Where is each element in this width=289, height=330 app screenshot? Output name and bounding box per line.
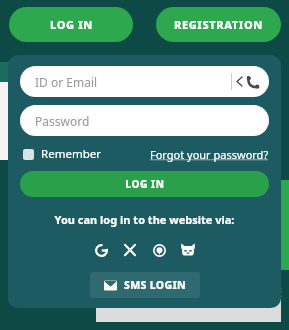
- staticText: LOG IN: [125, 177, 165, 191]
- staticText: Forgot your password?: [150, 147, 269, 162]
- button[interactable]: LOG IN: [9, 7, 133, 42]
- staticText: You can log in to the website via:: [20, 212, 269, 227]
- staticText: Password: [35, 113, 90, 129]
- staticText: REGISTRATION: [174, 17, 263, 32]
- button[interactable]: Sign in with VK: [178, 240, 198, 260]
- button[interactable]: Forgot your password?: [150, 147, 269, 162]
- staticText: LOG IN: [50, 17, 93, 32]
- button[interactable]: Password: [20, 105, 269, 136]
- button[interactable]: Remember: [23, 146, 101, 162]
- staticText: E: [276, 284, 283, 300]
- staticText: SMS LOGIN: [124, 278, 187, 292]
- button[interactable]: REGISTRATION: [156, 7, 281, 42]
- button[interactable]: ID or Email: [20, 66, 269, 97]
- button[interactable]: SMS LOGIN: [90, 272, 200, 298]
- button[interactable]: Sign in with X: [120, 240, 140, 260]
- button[interactable]: Sign in with Line: [149, 240, 169, 260]
- button[interactable]: Sign in with Google: [91, 240, 111, 260]
- button[interactable]: LOG IN: [20, 171, 269, 197]
- staticText: ID or Email: [35, 74, 98, 90]
- staticText: Remember: [41, 146, 101, 162]
